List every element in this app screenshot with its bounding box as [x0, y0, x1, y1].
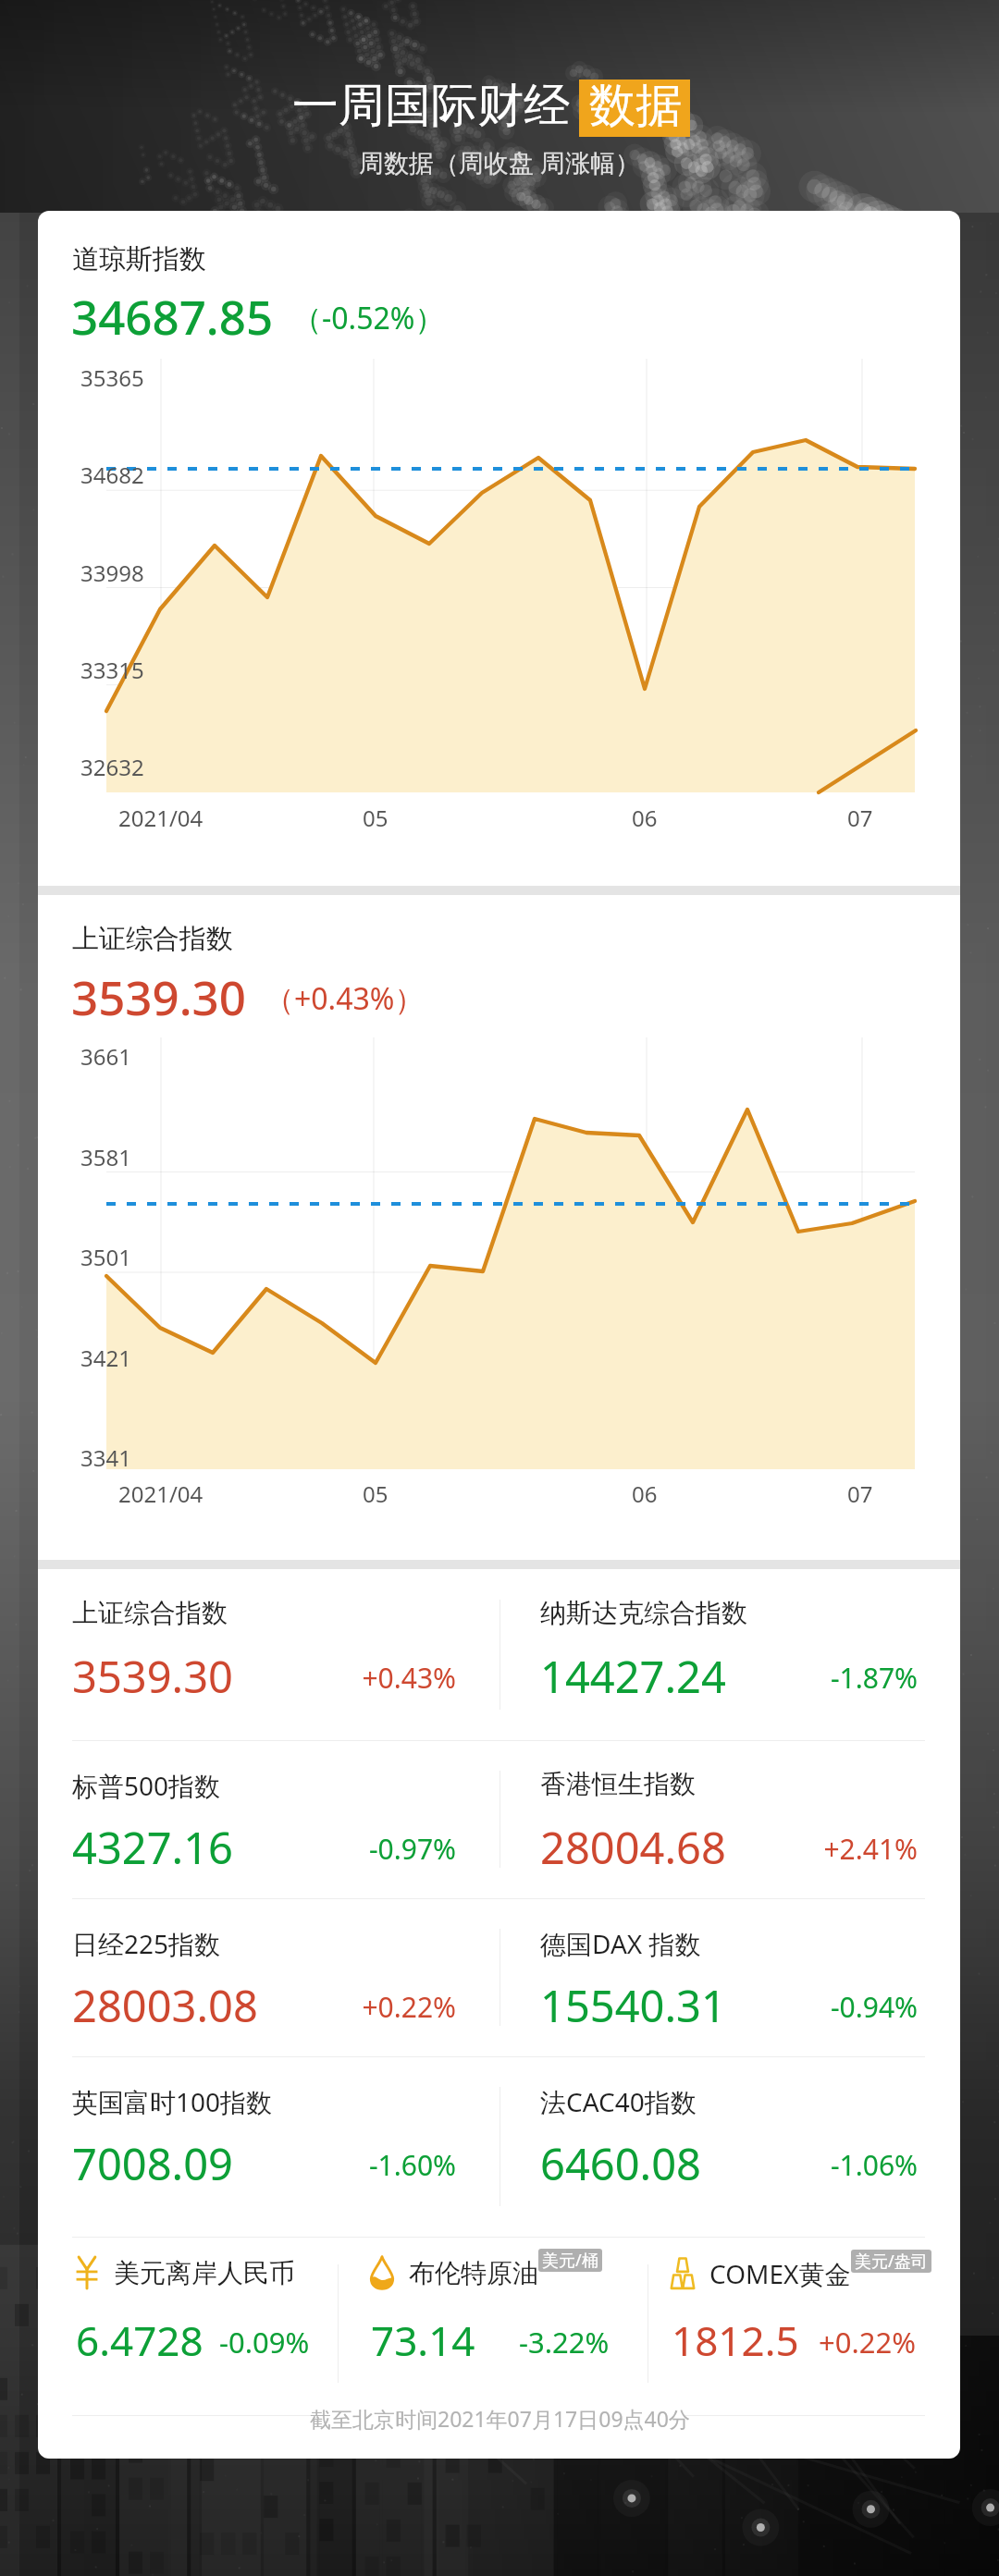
- staticText: 2021/04: [118, 1478, 203, 1509]
- staticText: 14427.24: [540, 1647, 726, 1706]
- button[interactable]: [652, 2237, 946, 2414]
- staticText: 1812.5: [672, 2312, 799, 2368]
- staticText: 34682: [80, 460, 144, 490]
- button[interactable]: [54, 1569, 475, 1726]
- staticText: 3501: [80, 1242, 131, 1272]
- staticText: 7008.09: [72, 2134, 233, 2193]
- staticText: -0.94%: [797, 1988, 918, 2026]
- staticText: -1.87%: [797, 1659, 918, 1697]
- staticText: 3581: [80, 1142, 131, 1172]
- staticText: 美元/桶: [542, 2249, 598, 2272]
- staticText: 截至北京时间2021年07月17日09点40分: [310, 2404, 690, 2432]
- button[interactable]: [54, 1740, 475, 1897]
- staticText: -0.09%: [219, 2323, 310, 2361]
- staticText: 法CAC40指数: [540, 2084, 697, 2119]
- staticText: 一周国际财经: [292, 77, 570, 135]
- button[interactable]: [56, 2237, 351, 2414]
- staticText: 28004.68: [540, 1818, 726, 1877]
- staticText: 2021/04: [118, 803, 203, 833]
- staticText: （+0.43%）: [265, 978, 425, 1019]
- staticText: 6.4728: [76, 2312, 203, 2368]
- staticText: COMEX黄金: [709, 2256, 851, 2291]
- staticText: 05: [363, 1478, 388, 1509]
- staticText: +2.41%: [797, 1830, 918, 1868]
- staticText: 15540.31: [540, 1976, 726, 2035]
- staticText: +0.43%: [336, 1659, 456, 1697]
- staticText: （-0.52%）: [292, 298, 445, 338]
- staticText: 32632: [80, 752, 144, 782]
- staticText: 6460.08: [540, 2134, 701, 2193]
- staticText: 4327.16: [72, 1818, 233, 1877]
- staticText: 日经225指数: [72, 1926, 221, 1961]
- staticText: 28003.08: [72, 1976, 258, 2035]
- staticText: 3421: [80, 1343, 131, 1373]
- staticText: 06: [632, 803, 658, 833]
- staticText: 35365: [80, 362, 144, 393]
- other: COMEX黄金: [671, 2257, 695, 2290]
- other: 美元离岸人民币: [75, 2256, 99, 2289]
- staticText: 道琼斯指数: [72, 242, 206, 276]
- staticText: 布伦特原油: [409, 2257, 538, 2289]
- staticText: -1.06%: [797, 2146, 918, 2184]
- button[interactable]: [54, 1898, 475, 2055]
- staticText: +0.22%: [819, 2323, 916, 2361]
- button[interactable]: [351, 2237, 646, 2414]
- staticText: 06: [632, 1478, 658, 1509]
- staticText: 3661: [80, 1041, 131, 1072]
- staticText: -0.97%: [336, 1830, 456, 1868]
- staticText: 3539.30: [71, 964, 246, 1028]
- staticText: 34687.85: [71, 284, 274, 348]
- staticText: +0.22%: [336, 1988, 456, 2026]
- staticText: 73.14: [371, 2312, 475, 2368]
- staticText: -1.60%: [336, 2146, 456, 2184]
- staticText: 标普500指数: [72, 1768, 221, 1803]
- staticText: 33315: [80, 655, 144, 685]
- button[interactable]: [54, 2056, 475, 2214]
- button[interactable]: [522, 1898, 936, 2055]
- staticText: 33998: [80, 558, 144, 588]
- staticText: 3341: [80, 1442, 131, 1473]
- staticText: 美元/盎司: [855, 2250, 928, 2273]
- button[interactable]: [522, 1569, 936, 1726]
- other: 布伦特原油: [370, 2256, 394, 2289]
- button[interactable]: [522, 2056, 936, 2214]
- staticText: 3539.30: [72, 1647, 233, 1706]
- staticText: 周数据（周收盘 周涨幅）: [359, 145, 641, 179]
- staticText: 香港恒生指数: [540, 1768, 696, 1800]
- staticText: 数据: [589, 77, 682, 135]
- button[interactable]: [522, 1740, 936, 1897]
- staticText: 纳斯达克综合指数: [540, 1597, 747, 1629]
- staticText: 美元离岸人民币: [114, 2257, 295, 2289]
- staticText: 英国富时100指数: [72, 2084, 273, 2119]
- staticText: 上证综合指数: [72, 1597, 228, 1629]
- staticText: 上证综合指数: [72, 922, 233, 956]
- staticText: 07: [847, 1478, 873, 1509]
- staticText: 德国DAX 指数: [540, 1926, 701, 1961]
- staticText: 05: [363, 803, 388, 833]
- staticText: -3.22%: [519, 2323, 610, 2361]
- staticText: 07: [847, 803, 873, 833]
